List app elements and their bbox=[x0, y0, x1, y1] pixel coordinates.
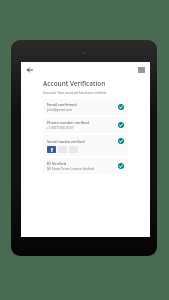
staticText: Phone number verified bbox=[47, 120, 89, 125]
staticText: Email confirmed bbox=[47, 102, 77, 107]
button[interactable]: Menu bbox=[135, 64, 147, 76]
staticText: NY State Driver License Verified bbox=[47, 167, 94, 171]
staticText: Account Verification bbox=[43, 79, 106, 88]
staticText: f bbox=[51, 147, 53, 153]
button[interactable]: Phone number verified bbox=[43, 117, 128, 133]
button[interactable]: Social media verified bbox=[43, 135, 128, 156]
button[interactable]: ID Verified bbox=[43, 158, 128, 174]
staticText: john@gmail.com bbox=[47, 108, 73, 112]
button[interactable]: Facebook bbox=[47, 146, 56, 153]
staticText: Social media verified bbox=[47, 139, 118, 144]
staticText: Success! Your account has been verified bbox=[43, 90, 107, 95]
button[interactable]: Back bbox=[24, 64, 36, 76]
staticText: ID Verified bbox=[47, 161, 67, 166]
staticText: +1 (607) 555-0147 bbox=[47, 126, 74, 130]
button[interactable]: Email confirmed bbox=[43, 99, 128, 115]
